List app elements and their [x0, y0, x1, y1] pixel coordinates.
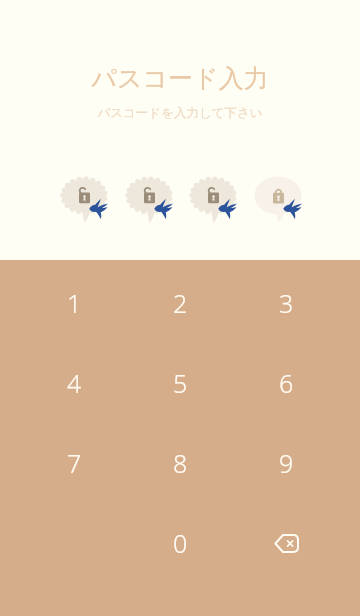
- button[interactable]: 8: [127, 423, 233, 503]
- staticText: 4: [67, 366, 82, 400]
- staticText: パスコードを入力して下さい: [97, 105, 263, 121]
- button[interactable]: 5: [127, 343, 233, 423]
- staticText: 1: [67, 286, 82, 320]
- button[interactable]: 7: [22, 423, 127, 503]
- staticText: 2: [173, 286, 188, 320]
- button[interactable]: 1: [22, 263, 127, 343]
- button[interactable]: 2: [127, 263, 233, 343]
- button[interactable]: Passcode digit 4: [255, 176, 307, 228]
- staticText: 9: [279, 446, 294, 480]
- button[interactable]: Backspace: [233, 503, 339, 583]
- button[interactable]: 9: [233, 423, 339, 503]
- button[interactable]: Passcode digit 3: [190, 176, 242, 228]
- button[interactable]: 4: [22, 343, 127, 423]
- staticText: 7: [67, 446, 82, 480]
- staticText: 3: [279, 286, 294, 320]
- staticText: パスコード入力: [91, 63, 269, 94]
- button[interactable]: 3: [233, 263, 339, 343]
- staticText: 8: [173, 446, 188, 480]
- button[interactable]: Passcode digit 1: [61, 176, 113, 228]
- staticText: 0: [173, 526, 188, 560]
- staticText: 6: [279, 366, 294, 400]
- button[interactable]: 6: [233, 343, 339, 423]
- staticText: 5: [173, 366, 188, 400]
- button[interactable]: 0: [127, 503, 233, 583]
- other: Backspace: [263, 520, 309, 566]
- button[interactable]: Passcode digit 2: [126, 176, 178, 228]
